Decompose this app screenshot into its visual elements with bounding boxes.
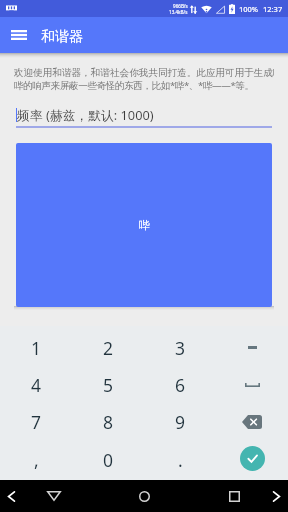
staticText: 欢迎使用和谐器，和谐社会你我共同打造。此应用可用于生成哔	[14, 67, 274, 79]
staticText: 13.4kB/s	[169, 9, 188, 15]
staticText: 966B/s	[173, 3, 188, 9]
button[interactable]: OK	[216, 441, 288, 479]
button[interactable]: 3	[144, 329, 216, 366]
staticText: 哔	[139, 218, 150, 232]
button[interactable]: 2	[72, 329, 144, 366]
button[interactable]: Menu	[0, 17, 36, 53]
button[interactable]: 0	[72, 441, 144, 479]
staticText: 6	[175, 373, 186, 397]
staticText: 哔的响声来屏蔽一些奇怪的东西，比如*哔*、*哔——*等。	[14, 79, 254, 92]
staticText: 12:37	[263, 4, 283, 14]
staticText: 100%	[239, 4, 259, 14]
staticText: 3	[175, 336, 186, 360]
button[interactable]: 频率 (赫兹，默认: 1000)	[16, 106, 272, 128]
button[interactable]: Hide keyboard	[0, 480, 35, 512]
button[interactable]: 4	[0, 366, 72, 403]
staticText: 和谐器	[41, 28, 83, 46]
staticText: .	[178, 448, 183, 472]
button[interactable]: 哔	[16, 143, 272, 307]
staticText: 4	[31, 373, 42, 397]
staticText: 0	[103, 448, 114, 472]
staticText: 1	[31, 336, 42, 360]
staticText: 9	[175, 410, 186, 434]
button[interactable]: Recents	[210, 480, 258, 512]
button[interactable]: ,	[0, 441, 72, 479]
staticText: 7	[31, 410, 42, 434]
button[interactable]: Home	[120, 480, 168, 512]
button[interactable]	[216, 366, 288, 403]
button[interactable]: .	[144, 441, 216, 479]
button[interactable]	[216, 329, 288, 366]
button[interactable]: 5	[72, 366, 144, 403]
button[interactable]	[216, 403, 288, 441]
button[interactable]: 9	[144, 403, 216, 441]
button[interactable]: Back	[30, 480, 78, 512]
other: OK	[240, 446, 265, 471]
staticText: ,	[34, 448, 39, 472]
button[interactable]: 7	[0, 403, 72, 441]
staticText: 频率 (赫兹，默认: 1000)	[17, 106, 154, 123]
staticText: 8	[103, 410, 114, 434]
staticText: 5	[103, 373, 114, 397]
staticText: 2	[103, 336, 114, 360]
button[interactable]: 1	[0, 329, 72, 366]
button[interactable]: 6	[144, 366, 216, 403]
button[interactable]: Next	[252, 480, 288, 512]
button[interactable]: 8	[72, 403, 144, 441]
